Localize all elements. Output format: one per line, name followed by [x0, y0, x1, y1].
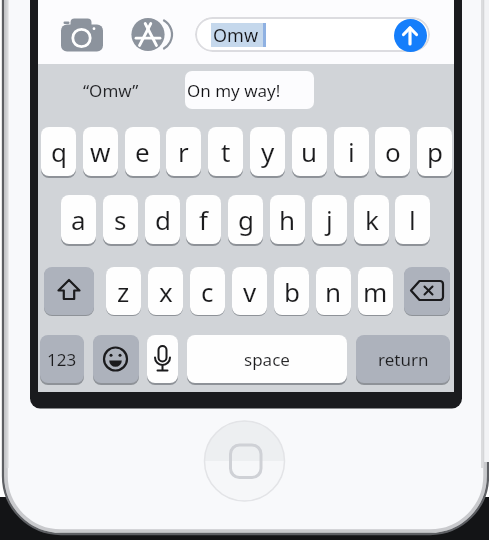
button[interactable]: c: [190, 267, 225, 315]
button[interactable]: y: [250, 127, 285, 176]
staticText: j: [326, 202, 333, 237]
button[interactable]: On my way!: [185, 71, 314, 109]
staticText: 123: [47, 348, 77, 371]
button[interactable]: [394, 19, 427, 52]
button[interactable]: [195, 17, 430, 52]
button[interactable]: f: [186, 195, 221, 244]
staticText: On my way!: [187, 79, 281, 102]
staticText: n: [325, 274, 342, 309]
button[interactable]: space: [187, 335, 347, 383]
button[interactable]: 123: [40, 335, 84, 383]
button[interactable]: r: [166, 127, 201, 176]
button[interactable]: [44, 267, 94, 315]
button[interactable]: j: [312, 195, 347, 244]
button[interactable]: i: [334, 127, 369, 176]
staticText: z: [117, 274, 130, 309]
staticText: e: [135, 134, 150, 169]
button[interactable]: [93, 335, 139, 383]
button[interactable]: v: [232, 267, 267, 315]
button[interactable]: a: [61, 195, 96, 244]
staticText: k: [365, 202, 379, 237]
button[interactable]: u: [292, 127, 327, 176]
staticText: m: [363, 274, 388, 309]
button[interactable]: s: [103, 195, 138, 244]
button[interactable]: o: [375, 127, 410, 176]
button[interactable]: e: [125, 127, 160, 176]
staticText: i: [348, 134, 355, 169]
staticText: “Omw”: [83, 79, 139, 102]
button[interactable]: g: [228, 195, 263, 244]
button[interactable]: m: [358, 267, 393, 315]
staticText: u: [301, 134, 318, 169]
staticText: c: [201, 274, 214, 309]
button[interactable]: t: [208, 127, 243, 176]
button[interactable]: l: [395, 195, 430, 244]
button[interactable]: k: [354, 195, 389, 244]
button[interactable]: z: [106, 267, 141, 315]
staticText: o: [385, 134, 401, 169]
staticText: s: [114, 202, 127, 237]
staticText: y: [261, 134, 275, 169]
staticText: r: [178, 134, 189, 169]
staticText: p: [427, 134, 443, 169]
button[interactable]: [147, 335, 178, 383]
button[interactable]: d: [145, 195, 180, 244]
staticText: w: [90, 134, 111, 169]
button[interactable]: w: [83, 127, 118, 176]
staticText: l: [409, 202, 416, 237]
staticText: space: [244, 348, 290, 371]
staticText: return: [378, 348, 429, 371]
staticText: Omw: [213, 23, 259, 48]
button[interactable]: “Omw”: [66, 71, 156, 109]
button[interactable]: [404, 267, 450, 315]
button[interactable]: x: [148, 267, 183, 315]
staticText: a: [71, 202, 86, 237]
button[interactable]: b: [274, 267, 309, 315]
staticText: b: [284, 274, 300, 309]
staticText: v: [243, 274, 257, 309]
staticText: x: [159, 274, 173, 309]
staticText: q: [51, 134, 67, 169]
staticText: f: [199, 202, 208, 237]
staticText: h: [279, 202, 296, 237]
staticText: d: [155, 202, 171, 237]
button[interactable]: h: [270, 195, 305, 244]
button[interactable]: n: [316, 267, 351, 315]
button[interactable]: p: [417, 127, 452, 176]
staticText: g: [238, 202, 254, 237]
staticText: t: [221, 134, 231, 169]
button[interactable]: return: [356, 335, 450, 383]
button[interactable]: q: [41, 127, 76, 176]
